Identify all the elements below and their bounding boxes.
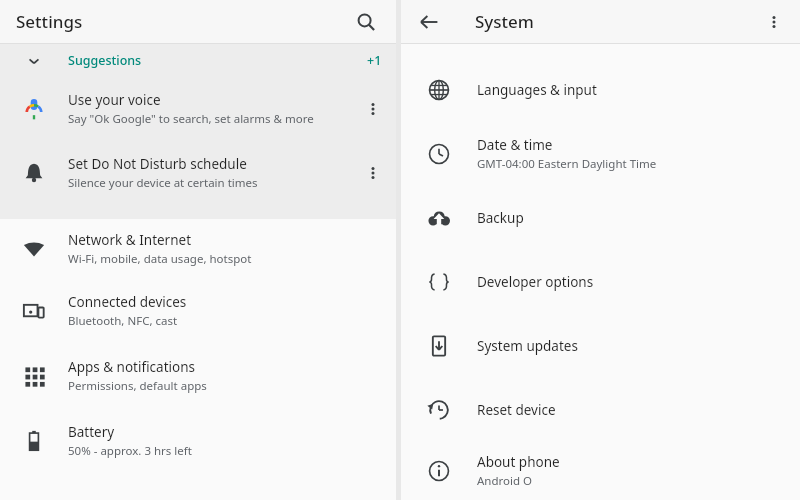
staticText: Apps & notifications	[68, 358, 195, 376]
staticText: About phone	[477, 453, 560, 471]
staticText: Backup	[477, 209, 524, 227]
staticText: System updates	[477, 337, 578, 355]
staticText: Bluetooth, NFC, cast	[68, 313, 178, 329]
button[interactable]: Backup	[401, 186, 800, 250]
staticText: Developer options	[477, 273, 594, 291]
button[interactable]: Network & Internet	[0, 219, 396, 278]
button[interactable]: Battery	[0, 408, 396, 473]
staticText: Use your voice	[68, 91, 161, 109]
staticText: Languages & input	[477, 81, 597, 99]
button[interactable]: More options	[350, 77, 396, 141]
button[interactable]: Developer options	[401, 250, 800, 314]
button[interactable]: Date & time	[401, 122, 800, 186]
staticText: Settings	[16, 10, 83, 33]
staticText: Permissions, default apps	[68, 378, 207, 394]
staticText: +1	[367, 52, 382, 69]
staticText: Reset device	[477, 401, 556, 419]
staticText: Silence your device at certain times	[68, 175, 258, 191]
staticText: Say "Ok Google" to search, set alarms & …	[68, 111, 314, 127]
staticText: 50% - approx. 3 hrs left	[68, 443, 192, 459]
button[interactable]: System updates	[401, 314, 800, 378]
staticText: Suggestions	[68, 52, 142, 69]
button[interactable]: More options	[756, 4, 792, 40]
staticText: Set Do Not Disturb schedule	[68, 155, 247, 173]
staticText: Wi-Fi, mobile, data usage, hotspot	[68, 251, 252, 267]
staticText: GMT-04:00 Eastern Daylight Time	[477, 156, 657, 172]
button[interactable]: Suggestions	[0, 44, 396, 77]
button[interactable]: Search	[348, 4, 384, 40]
staticText: Connected devices	[68, 293, 187, 311]
button[interactable]: Apps & notifications	[0, 343, 396, 408]
staticText: System	[475, 10, 534, 33]
staticText: Android O	[477, 473, 533, 489]
staticText: Network & Internet	[68, 231, 192, 249]
button[interactable]: Connected devices	[0, 278, 396, 343]
button[interactable]: Reset device	[401, 378, 800, 442]
button[interactable]: Languages & input	[401, 58, 800, 122]
button[interactable]: About phone	[401, 442, 800, 500]
button[interactable]: Set Do Not Disturb schedule	[0, 141, 396, 205]
button[interactable]: Back	[411, 4, 447, 40]
staticText: Battery	[68, 423, 115, 441]
button[interactable]: More options	[350, 141, 396, 205]
button[interactable]: Use your voice	[0, 77, 396, 141]
staticText: Date & time	[477, 136, 553, 154]
